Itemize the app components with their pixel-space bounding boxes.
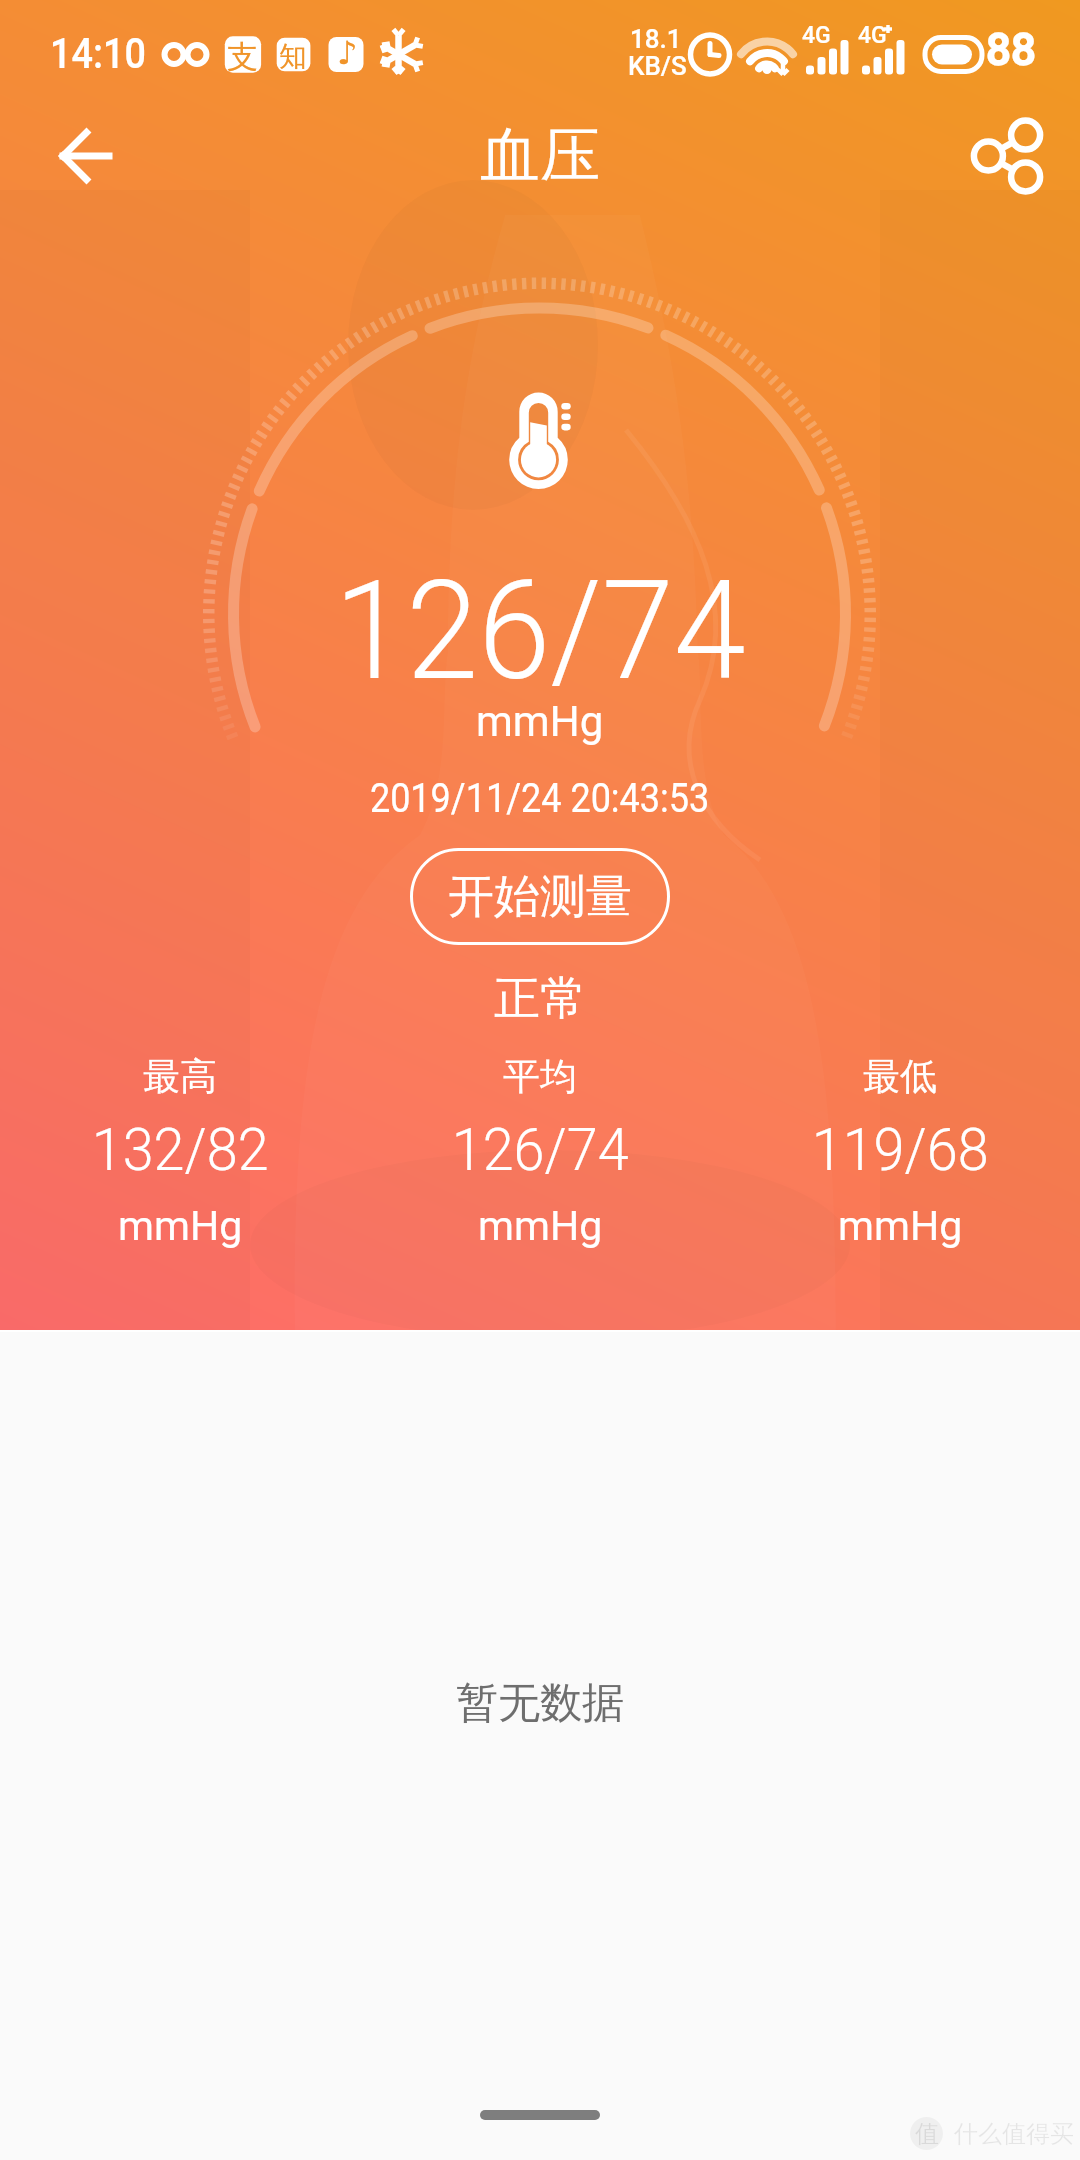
staticText: 18.1 xyxy=(630,24,682,54)
staticText: 支 xyxy=(227,37,258,76)
staticText: 126/74 xyxy=(452,1114,629,1184)
staticText: 132/82 xyxy=(92,1114,269,1184)
staticText: KB/S xyxy=(628,51,687,81)
staticText: 知 xyxy=(279,39,307,74)
staticText: mmHg xyxy=(478,1202,603,1250)
staticText: 开始测量 xyxy=(448,868,632,926)
staticText: 126/74 xyxy=(334,550,746,712)
staticText: 暂无数据 xyxy=(456,1677,624,1730)
staticText: 4G xyxy=(802,22,831,49)
button[interactable]: Share xyxy=(959,108,1055,204)
staticText: 什么值得买 xyxy=(954,2119,1074,2149)
staticText: 2019/11/24 20:43:53 xyxy=(370,775,710,822)
staticText: 平均 xyxy=(503,1053,577,1100)
staticText: mmHg xyxy=(476,697,604,746)
staticText: 14:10 xyxy=(50,29,146,78)
staticText: 最低 xyxy=(863,1053,937,1100)
button[interactable]: 开始测量 xyxy=(410,848,670,945)
staticText: 血压 xyxy=(480,118,600,194)
staticText: mmHg xyxy=(118,1202,243,1250)
button[interactable]: Back xyxy=(37,108,133,204)
staticText: 4G xyxy=(858,22,887,49)
staticText: ♪ xyxy=(337,34,358,71)
staticText: 最高 xyxy=(143,1053,217,1100)
staticText: 88 xyxy=(986,24,1037,76)
staticText: mmHg xyxy=(838,1202,963,1250)
staticText: 值 xyxy=(915,2119,939,2149)
staticText: 119/68 xyxy=(812,1114,989,1184)
staticText: 正常 xyxy=(494,970,586,1028)
